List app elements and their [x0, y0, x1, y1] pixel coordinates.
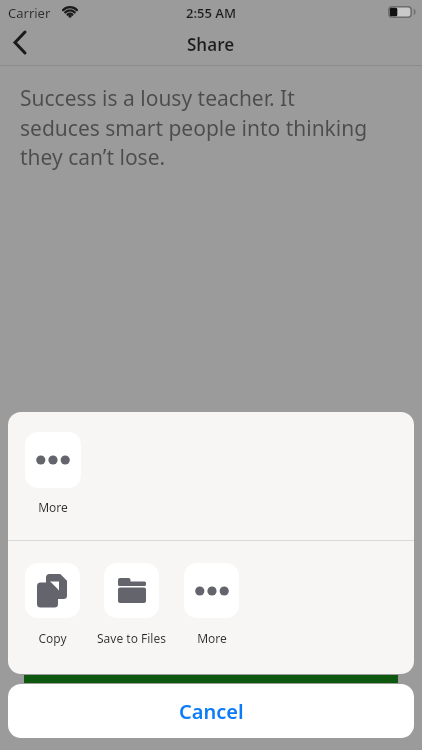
button[interactable] — [6, 28, 36, 58]
staticText: More — [38, 499, 68, 515]
button[interactable]: Cancel — [8, 684, 414, 738]
staticText: Save to Files — [97, 630, 166, 646]
staticText: Success is a lousy teacher. It seduces s… — [20, 84, 368, 171]
button[interactable] — [104, 563, 159, 618]
staticText: Share — [187, 33, 235, 56]
staticText: 2:55 AM — [186, 4, 237, 22]
button[interactable] — [25, 432, 81, 488]
staticText: Copy — [38, 630, 67, 646]
staticText: Cancel — [179, 698, 244, 725]
button[interactable] — [184, 563, 239, 618]
button[interactable] — [25, 563, 80, 618]
staticText: More — [197, 630, 227, 646]
staticText: Carrier — [8, 4, 51, 22]
